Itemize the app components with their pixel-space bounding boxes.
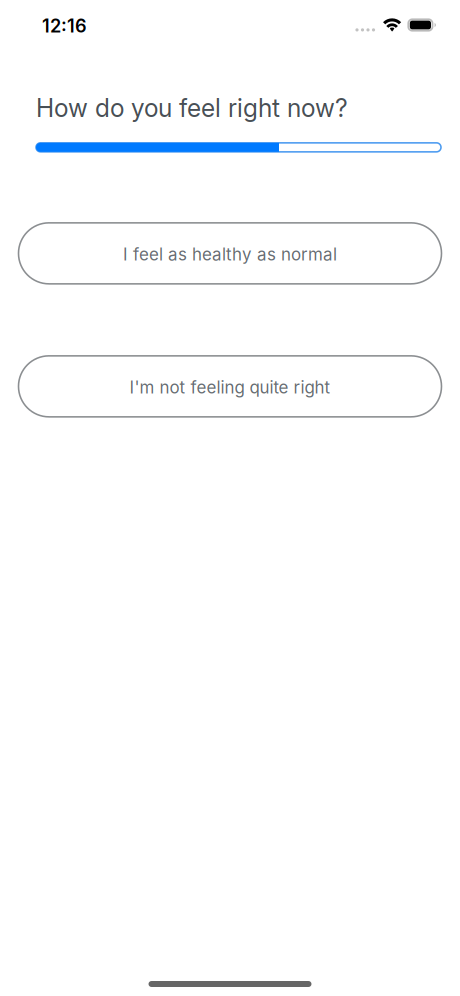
- staticText: I'm not feeling quite right: [129, 377, 330, 398]
- button[interactable]: I feel as healthy as normal: [18, 223, 441, 284]
- staticText: 12:16: [42, 15, 87, 37]
- staticText: How do you feel right now?: [36, 93, 348, 123]
- button[interactable]: I'm not feeling quite right: [18, 356, 441, 417]
- staticText: I feel as healthy as normal: [123, 244, 337, 265]
